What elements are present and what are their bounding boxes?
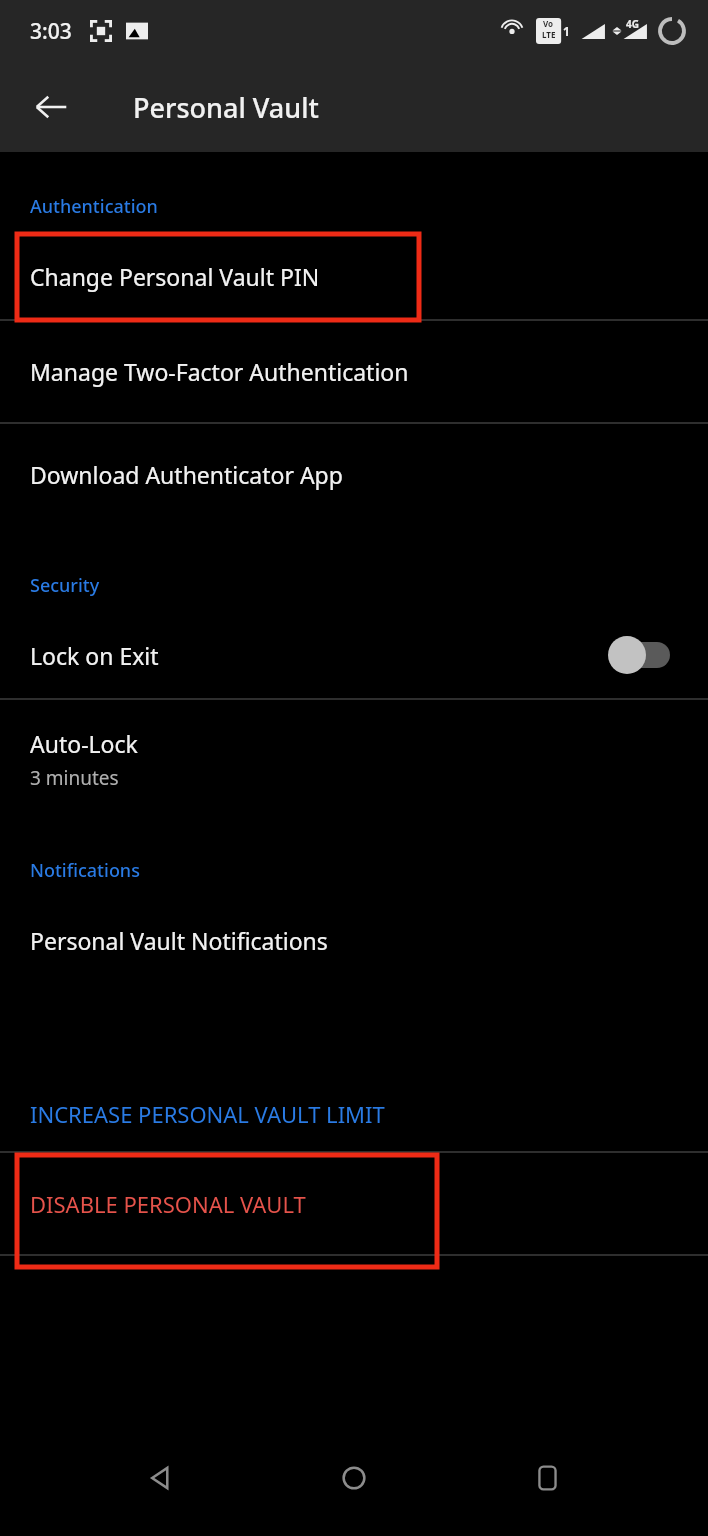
staticText: Manage Two-Factor Authentication bbox=[30, 356, 409, 387]
button[interactable]: Recent apps bbox=[514, 1444, 582, 1512]
staticText: Lock on Exit bbox=[30, 640, 159, 671]
staticText: Notifications bbox=[30, 858, 708, 883]
staticText: Security bbox=[30, 573, 708, 598]
button[interactable]: Personal Vault Notifications bbox=[0, 897, 708, 983]
staticText: 1 bbox=[563, 23, 570, 39]
button[interactable]: Back bbox=[126, 1444, 194, 1512]
staticText: Personal Vault bbox=[133, 89, 319, 126]
button[interactable]: Auto-Lock bbox=[0, 700, 708, 818]
button[interactable]: INCREASE PERSONAL VAULT LIMIT bbox=[0, 1077, 708, 1151]
staticText: INCREASE PERSONAL VAULT LIMIT bbox=[30, 1099, 385, 1129]
staticText: Download Authenticator App bbox=[30, 459, 343, 490]
button[interactable]: Lock on Exit bbox=[0, 612, 708, 698]
staticText: Authentication bbox=[30, 194, 708, 219]
staticText: 4G bbox=[626, 17, 639, 31]
staticText: Auto-Lock bbox=[30, 728, 138, 759]
button[interactable]: Manage Two-Factor Authentication bbox=[0, 321, 708, 422]
staticText: LTE bbox=[542, 29, 556, 40]
staticText: Vo bbox=[543, 18, 554, 29]
button[interactable]: Download Authenticator App bbox=[0, 424, 708, 525]
staticText: Change Personal Vault PIN bbox=[30, 261, 320, 292]
staticText: 3 minutes bbox=[30, 765, 119, 791]
button[interactable]: Home bbox=[320, 1444, 388, 1512]
staticText: DISABLE PERSONAL VAULT bbox=[30, 1189, 306, 1219]
button[interactable]: Change Personal Vault PIN bbox=[0, 233, 708, 319]
staticText: Personal Vault Notifications bbox=[30, 925, 328, 956]
staticText: 3:03 bbox=[30, 17, 72, 46]
button[interactable]: DISABLE PERSONAL VAULT bbox=[0, 1153, 708, 1254]
button[interactable]: Back bbox=[18, 74, 84, 140]
